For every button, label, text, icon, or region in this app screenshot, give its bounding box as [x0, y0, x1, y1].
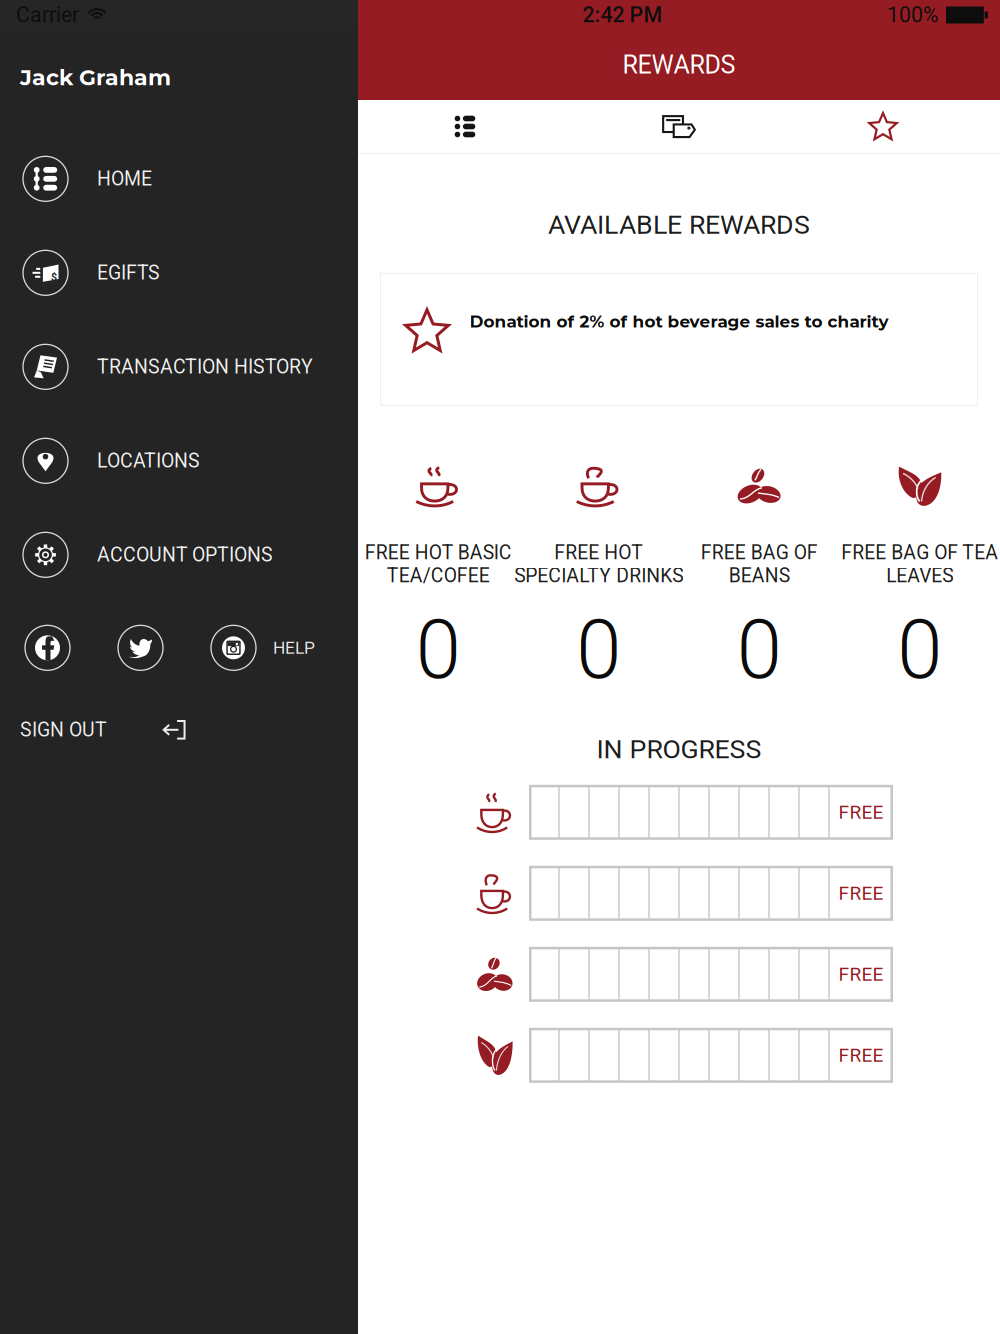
staticText: TRANSACTION HISTORY: [97, 355, 313, 378]
button[interactable]: Facebook: [25, 625, 70, 670]
staticText: LEAVES: [886, 564, 953, 587]
button[interactable]: $: [0, 226, 358, 320]
button[interactable]: HOME: [0, 132, 358, 226]
staticText: FREE BAG OF: [701, 541, 818, 564]
button[interactable]: Rewards list: [358, 100, 572, 152]
button[interactable]: Twitter: [118, 625, 163, 670]
button[interactable]: Instagram: [211, 625, 256, 670]
staticText: FREE BAG OF TEA: [841, 541, 998, 564]
button[interactable]: Gift cards: [572, 100, 786, 152]
button[interactable]: SIGN OUT: [0, 694, 358, 766]
staticText: FREE: [838, 1044, 883, 1066]
staticText: ACCOUNT OPTIONS: [97, 543, 273, 566]
staticText: AVAILABLE REWARDS: [548, 209, 810, 240]
button[interactable]: Favourites: [786, 100, 1000, 152]
button[interactable]: HELP: [256, 625, 332, 670]
staticText: FREE: [838, 801, 883, 823]
staticText: $: [51, 271, 57, 284]
staticText: LOCATIONS: [97, 449, 200, 472]
button[interactable]: TRANSACTION HISTORY: [0, 320, 358, 414]
staticText: FREE HOT BASIC: [365, 541, 512, 564]
staticText: Carrier: [16, 2, 79, 27]
button[interactable]: LOCATIONS: [0, 414, 358, 508]
staticText: 0: [576, 602, 621, 698]
staticText: 0: [416, 602, 461, 698]
staticText: Donation of 2% of hot beverage sales to …: [469, 311, 888, 332]
staticText: 2:42 PM: [582, 2, 662, 27]
staticText: Jack Graham: [20, 64, 171, 91]
staticText: REWARDS: [622, 50, 735, 80]
staticText: IN PROGRESS: [596, 734, 761, 765]
staticText: FREE: [838, 882, 883, 904]
button[interactable]: ACCOUNT OPTIONS: [0, 508, 358, 602]
staticText: 0: [737, 602, 782, 698]
staticText: EGIFTS: [97, 261, 160, 284]
staticText: 0: [897, 602, 942, 698]
staticText: SPECIALTY DRINKS: [514, 564, 683, 587]
staticText: HELP: [273, 638, 315, 658]
staticText: FREE: [838, 963, 883, 985]
staticText: HOME: [97, 167, 152, 190]
staticText: BEANS: [729, 564, 790, 587]
staticText: 100%: [887, 2, 939, 27]
staticText: TEA/COFEE: [387, 564, 490, 587]
staticText: SIGN OUT: [20, 718, 107, 741]
staticText: FREE HOT: [554, 541, 643, 564]
